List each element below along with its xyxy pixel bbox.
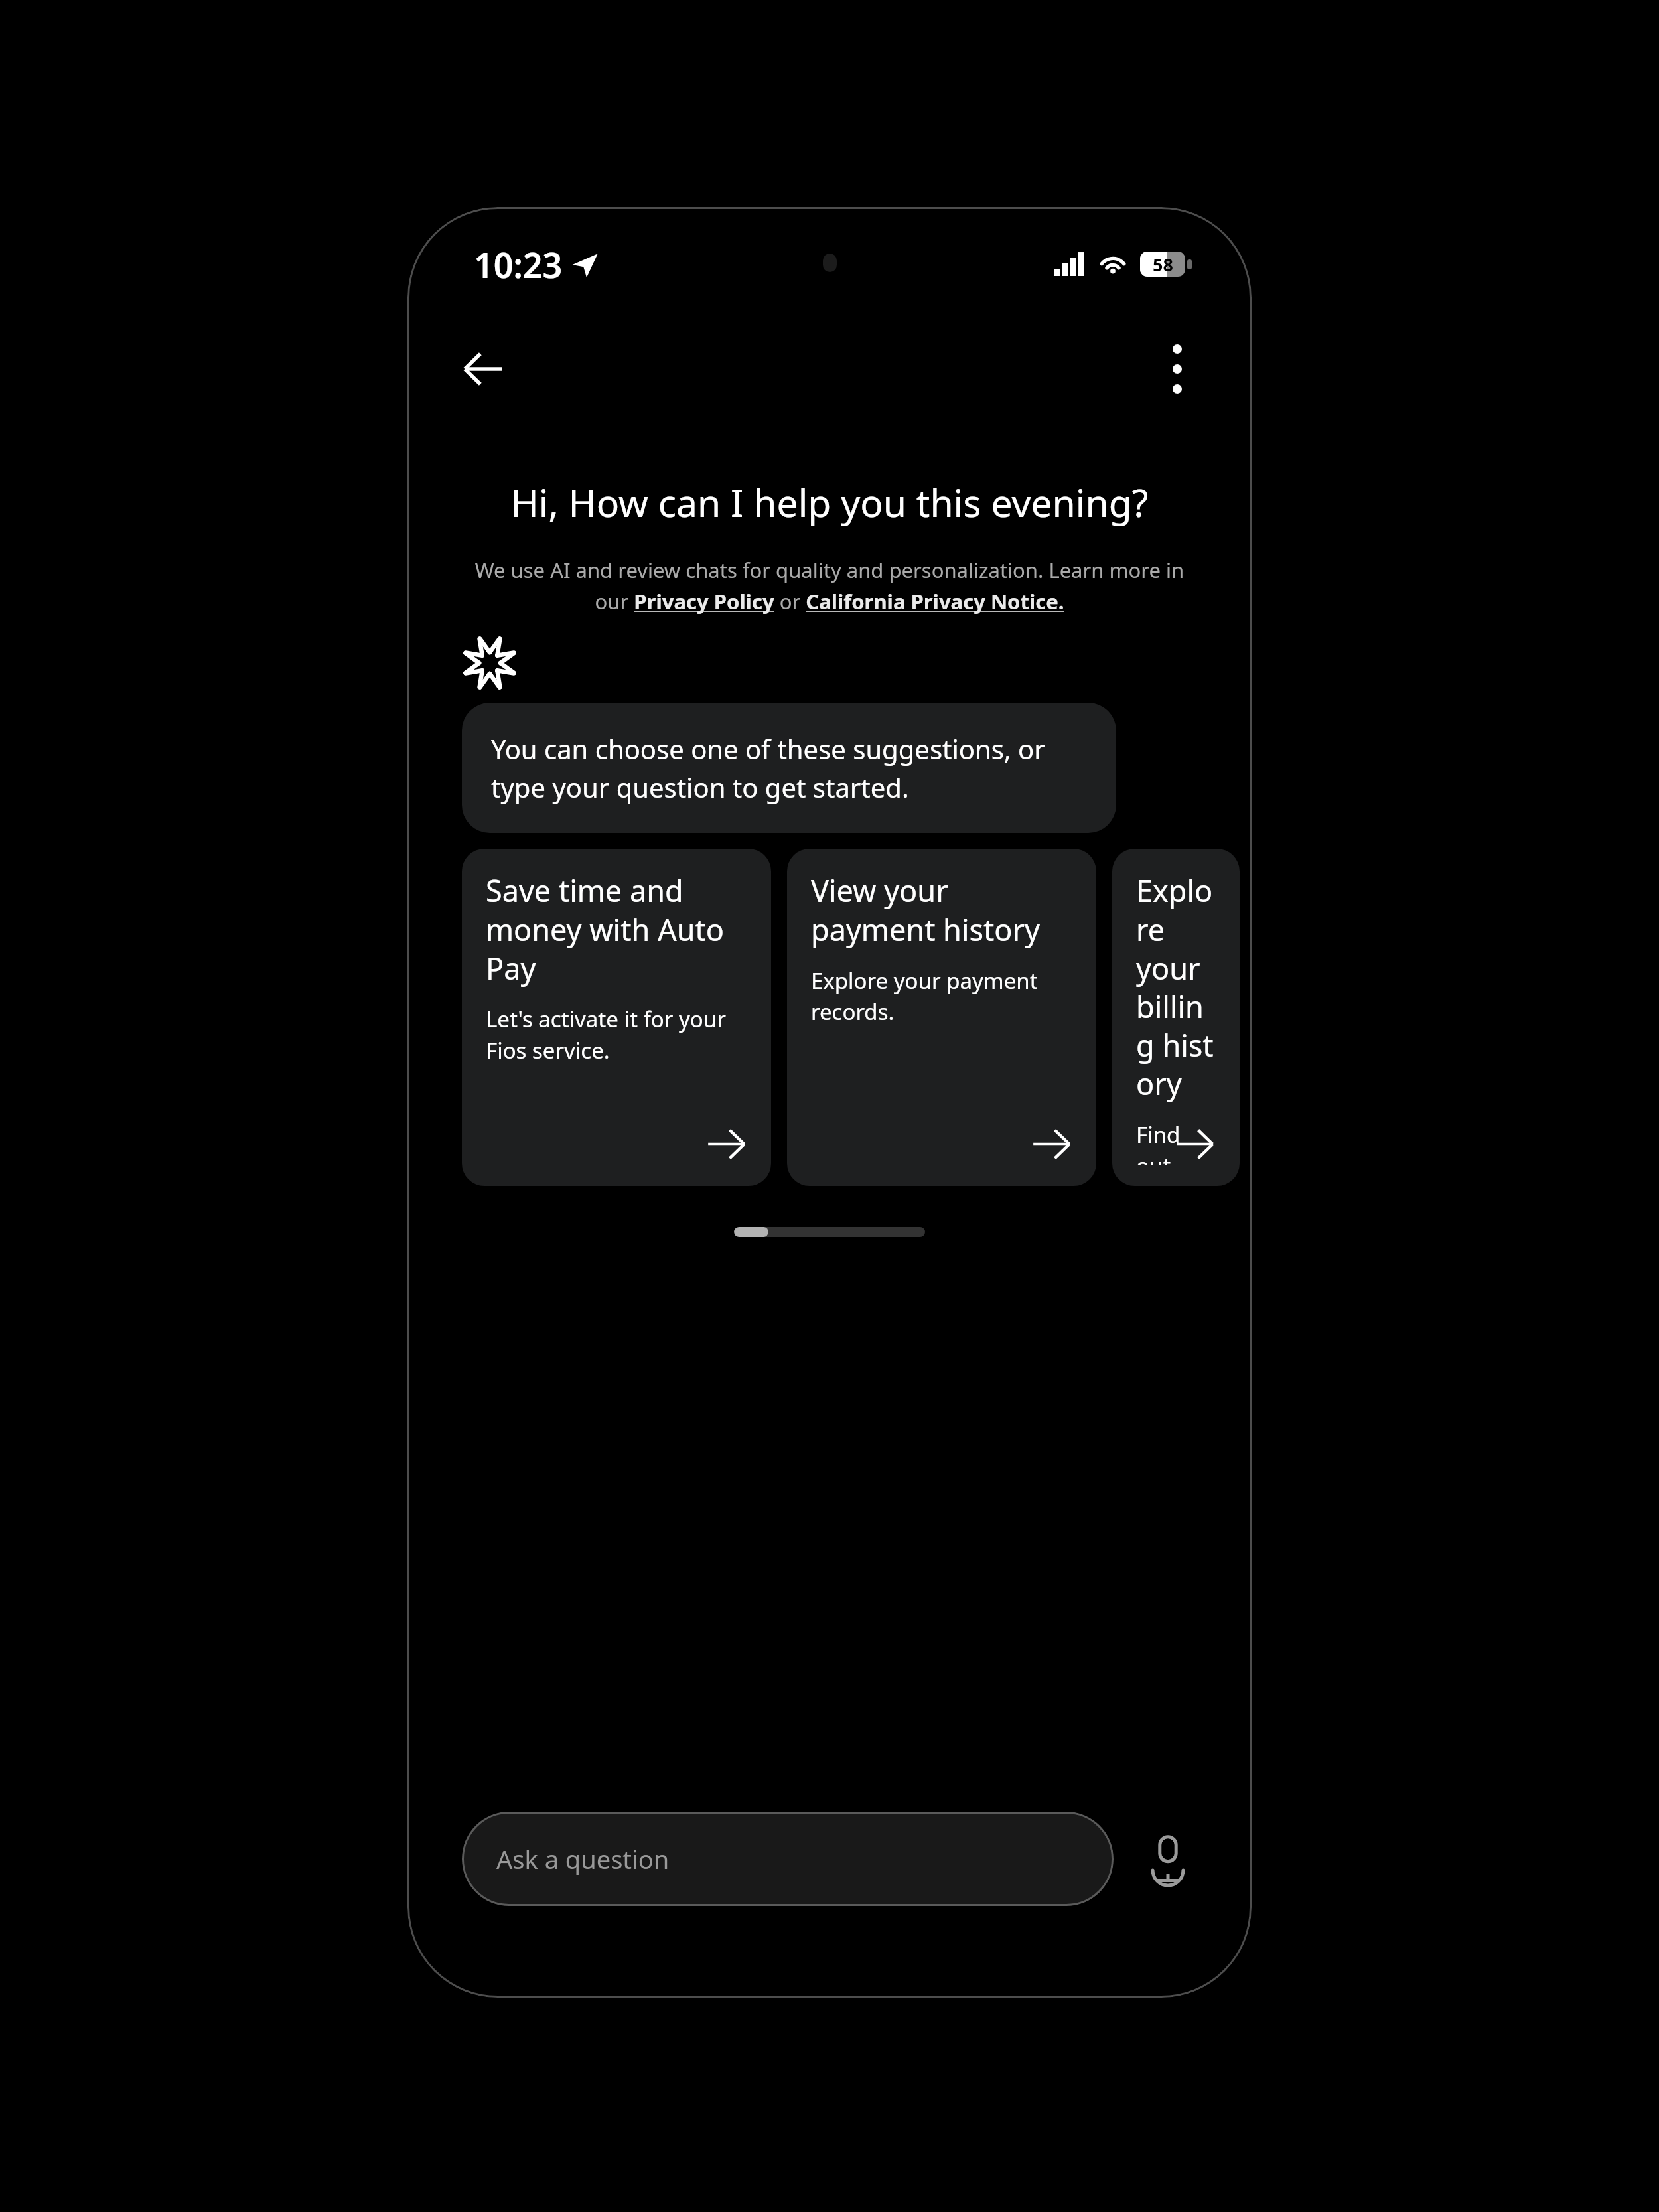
staticText: 58 — [1153, 252, 1173, 277]
button[interactable]: Voice input — [1131, 1822, 1205, 1896]
button[interactable]: Open suggestion — [1031, 1124, 1072, 1165]
staticText: Save time and money with Auto Pay — [486, 870, 747, 988]
staticText: Explore your billing history — [1136, 870, 1216, 1104]
button[interactable]: Back — [450, 336, 516, 402]
staticText: You can choose one of these suggestions,… — [491, 731, 1087, 805]
staticText: Hi, How can I help you this evening? — [469, 477, 1190, 528]
staticText: Explore your payment records. — [811, 966, 1072, 1027]
button[interactable]: Open suggestion — [1175, 1124, 1216, 1165]
button[interactable]: View your payment history — [787, 849, 1096, 1186]
staticText: Ask a question — [496, 1842, 670, 1876]
staticText: View your payment history — [811, 870, 1072, 950]
staticText: We use AI and review chats for quality a… — [459, 556, 1200, 615]
button[interactable]: More options — [1144, 336, 1210, 402]
button[interactable]: Explore your billing history — [1112, 849, 1240, 1186]
button[interactable]: Ask a question — [462, 1812, 1114, 1906]
staticText: 10:23 — [474, 241, 563, 288]
staticText: Let's activate it for your Fios service. — [486, 1004, 747, 1065]
button[interactable]: Open suggestion — [706, 1124, 747, 1165]
staticText: Find out about your past bills. — [1136, 1120, 1216, 1165]
button[interactable]: Save time and money with Auto Pay — [462, 849, 771, 1186]
button[interactable]: You can choose one of these suggestions,… — [462, 703, 1116, 833]
